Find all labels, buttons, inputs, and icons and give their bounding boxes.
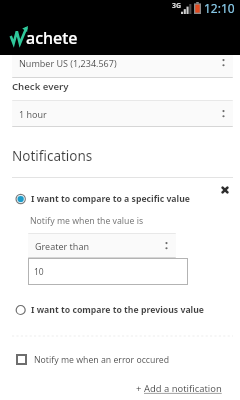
staticText: I want to compare to the previous value: [31, 304, 205, 316]
button[interactable]: 10: [28, 258, 188, 285]
button[interactable]: +: [136, 381, 222, 396]
button[interactable]: I want to compare to a specific value: [12, 190, 202, 207]
button[interactable]: I want to compare to the previous value: [12, 301, 212, 318]
staticText: Number US (1,234.567): [19, 57, 117, 69]
button[interactable]: Number US (1,234.567): [12, 47, 233, 78]
staticText: 3G: [172, 1, 182, 11]
staticText: 1 hour: [19, 108, 47, 120]
staticText: Add a notification: [144, 382, 222, 395]
staticText: Check every: [12, 80, 69, 93]
button[interactable]: Notify me when an error occured: [16, 351, 206, 368]
staticText: Notify me when the value is: [30, 215, 144, 227]
staticText: I want to compare to a specific value: [31, 193, 190, 205]
staticText: 10: [34, 266, 44, 278]
staticText: Greater than: [35, 240, 90, 252]
staticText: achete: [26, 27, 78, 49]
staticText: Notify me when an error occured: [34, 354, 170, 366]
button[interactable]: Close: [216, 181, 234, 199]
button[interactable]: 1 hour: [12, 100, 233, 127]
button[interactable]: Greater than: [28, 233, 176, 258]
staticText: +: [136, 382, 144, 395]
staticText: 12:10: [204, 0, 235, 16]
staticText: Notifications: [12, 147, 93, 165]
